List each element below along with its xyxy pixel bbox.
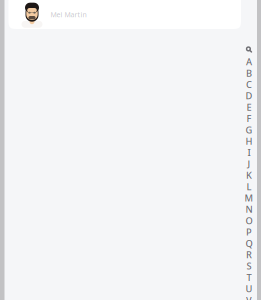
button[interactable]: F <box>242 113 256 124</box>
button[interactable]: B <box>242 67 256 79</box>
staticText: T <box>246 271 251 283</box>
button[interactable]: N <box>242 203 256 215</box>
button[interactable]: K <box>242 169 256 181</box>
staticText: A <box>246 55 252 68</box>
staticText: U <box>245 282 252 295</box>
staticText: K <box>246 169 252 181</box>
button[interactable]: P <box>242 226 256 237</box>
staticText: E <box>246 101 251 113</box>
button[interactable]: G <box>242 124 256 135</box>
button[interactable]: L <box>242 181 256 192</box>
button[interactable]: H <box>242 135 256 147</box>
button[interactable]: O <box>242 215 256 226</box>
staticText: P <box>246 226 252 238</box>
button[interactable]: U <box>242 283 256 294</box>
button[interactable]: J <box>242 158 256 169</box>
staticText: I <box>247 146 250 159</box>
button[interactable]: D <box>242 90 256 101</box>
button[interactable]: C <box>242 79 256 90</box>
button[interactable]: R <box>242 249 256 260</box>
staticText: F <box>246 112 251 125</box>
button[interactable]: S <box>242 260 256 272</box>
staticText: Mel Martin <box>50 10 86 19</box>
staticText: Q <box>245 237 252 249</box>
button[interactable]: E <box>242 101 256 113</box>
staticText: H <box>245 135 252 147</box>
staticText: V <box>246 294 252 300</box>
button[interactable]: Search <box>242 43 256 56</box>
staticText: O <box>245 214 252 227</box>
staticText: M <box>244 192 253 204</box>
staticText: L <box>246 180 251 193</box>
button[interactable]: A <box>242 56 256 67</box>
button[interactable]: T <box>242 272 256 283</box>
staticText: N <box>245 203 252 215</box>
staticText: S <box>246 260 251 272</box>
staticText: D <box>245 89 252 102</box>
button[interactable]: V <box>242 294 256 300</box>
button[interactable]: Mel Martin <box>8 0 241 29</box>
button[interactable]: I <box>242 147 256 158</box>
button[interactable]: Q <box>242 238 256 249</box>
staticText: B <box>246 67 252 79</box>
button[interactable]: M <box>242 192 256 203</box>
staticText: R <box>246 248 252 261</box>
staticText: G <box>245 124 252 136</box>
staticText: J <box>247 158 250 170</box>
staticText: C <box>246 78 252 91</box>
